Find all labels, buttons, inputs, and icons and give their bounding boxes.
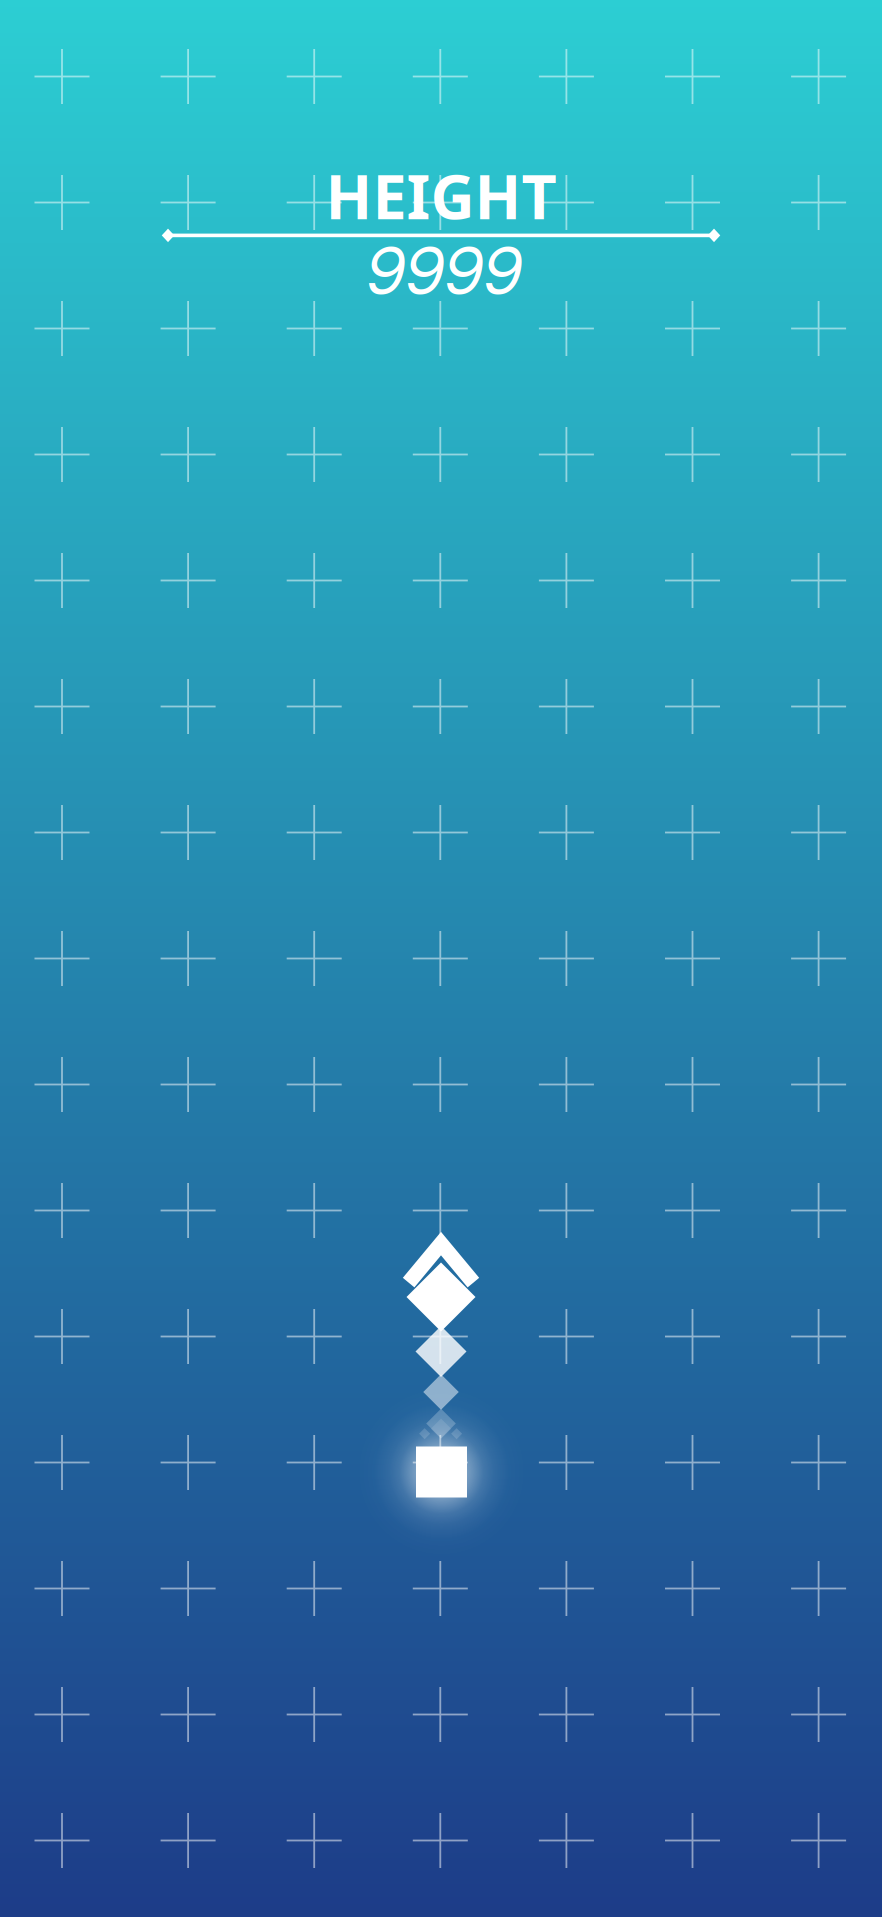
staticText: 9999 [363,236,519,309]
staticText: HEIGHT [325,154,556,237]
button[interactable]: Tap to jump [0,0,882,1917]
